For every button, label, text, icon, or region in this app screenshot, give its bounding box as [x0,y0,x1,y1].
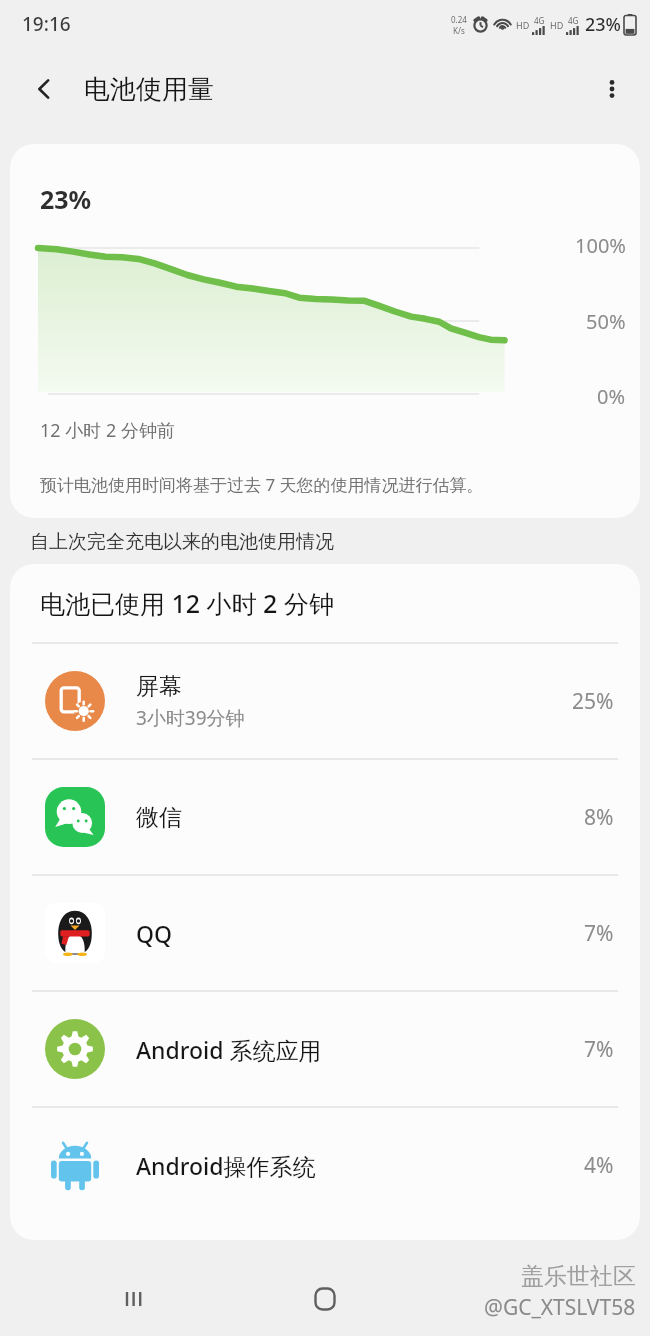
button[interactable]: Back [22,67,66,111]
button[interactable]: 微信 [10,760,640,874]
button[interactable]: Back [486,1271,542,1327]
button[interactable]: 屏幕 [10,644,640,758]
button[interactable]: Android 系统应用 [10,992,640,1106]
staticText: 19:16 [22,11,71,37]
staticText: HD [516,19,530,31]
staticText: 微信 [136,803,182,832]
staticText: HD [550,19,564,31]
staticText: 100% [575,232,626,259]
staticText: 23% [40,182,92,216]
button[interactable]: Recents [108,1271,164,1327]
staticText: 7% [584,919,614,948]
staticText: K/s [453,25,465,36]
button[interactable]: Home [297,1271,353,1327]
staticText: 4G [568,15,579,26]
staticText: 23% [585,12,621,37]
staticText: 预计电池使用时间将基于过去 7 天您的使用情况进行估算。 [40,473,484,496]
staticText: 盖乐世社区 [521,1262,636,1291]
staticText: 50% [586,308,626,335]
staticText: 3小时39分钟 [136,705,245,731]
staticText: 8% [584,803,614,832]
staticText: 4G [534,15,545,26]
button[interactable]: More options [590,67,634,111]
staticText: 4% [584,1151,614,1180]
staticText: 屏幕 [136,672,182,701]
staticText: Android操作系统 [136,1150,316,1181]
staticText: 0.24 [451,14,467,25]
staticText: 7% [584,1035,614,1064]
staticText: @GC_XTSLVT58 [484,1293,636,1322]
button[interactable]: Android操作系统 [10,1108,640,1222]
button[interactable]: 23% [10,144,640,518]
staticText: Android 系统应用 [136,1034,322,1065]
staticText: 电池已使用 12 小时 2 分钟 [40,586,334,620]
staticText: 自上次完全充电以来的电池使用情况 [30,530,334,554]
staticText: 0% [597,383,626,410]
button[interactable]: QQ [10,876,640,990]
staticText: 25% [572,687,614,716]
staticText: QQ [136,918,173,949]
staticText: 12 小时 2 分钟前 [40,418,175,443]
staticText: 电池使用量 [84,73,214,106]
